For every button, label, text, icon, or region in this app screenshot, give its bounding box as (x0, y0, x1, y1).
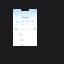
button[interactable]: Quick action (26, 20, 29, 25)
button[interactable] (14, 44, 36, 46)
button[interactable]: Quick action (31, 20, 34, 25)
button[interactable]: Quick action (21, 20, 24, 25)
button[interactable]: Quick action (16, 20, 19, 25)
button[interactable] (14, 39, 36, 41)
button[interactable] (14, 28, 36, 30)
button[interactable] (14, 33, 36, 36)
